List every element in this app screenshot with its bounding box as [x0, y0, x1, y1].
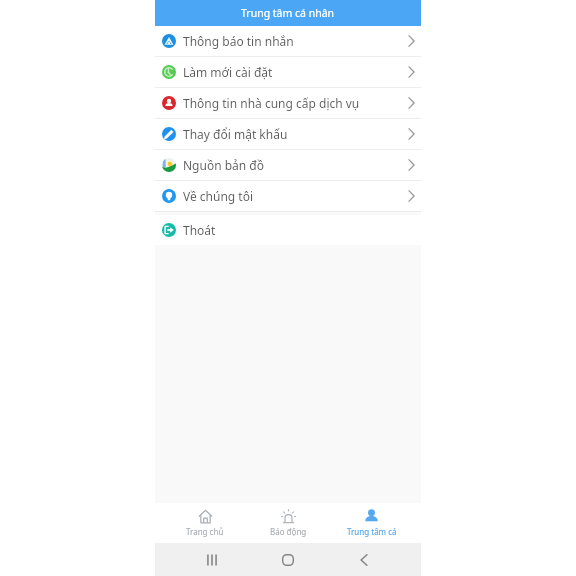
button[interactable]: Làm mới cài đặt — [155, 57, 421, 87]
staticText: Thông báo tin nhắn — [183, 33, 294, 49]
button[interactable]: Thoát — [155, 215, 421, 245]
button[interactable]: Nguồn bản đồ — [155, 150, 421, 180]
staticText: Thông tin nhà cung cấp dịch vụ — [183, 95, 360, 111]
button[interactable]: Thông tin nhà cung cấp dịch vụ — [155, 88, 421, 118]
staticText: Thay đổi mật khẩu — [183, 126, 288, 142]
button[interactable]: Recent apps — [200, 548, 224, 572]
staticText: Báo động — [270, 526, 307, 537]
button[interactable]: Thông báo tin nhắn — [155, 26, 421, 56]
button[interactable]: Back — [352, 548, 376, 572]
button[interactable]: Home — [276, 548, 300, 572]
staticText: Trung tâm cá nhân — [241, 6, 335, 20]
staticText: Trang chủ — [186, 526, 224, 537]
staticText: Nguồn bản đồ — [183, 157, 265, 173]
button[interactable]: Thay đổi mật khẩu — [155, 119, 421, 149]
staticText: Về chúng tôi — [183, 188, 254, 204]
staticText: Làm mới cài đặt — [183, 64, 273, 80]
button[interactable]: Trung tâm cá — [330, 503, 413, 543]
staticText: Thoát — [183, 222, 216, 238]
button[interactable]: Về chúng tôi — [155, 181, 421, 211]
button[interactable]: Báo động — [247, 503, 330, 543]
staticText: Trung tâm cá — [347, 526, 397, 537]
button[interactable]: Trang chủ — [163, 503, 247, 543]
